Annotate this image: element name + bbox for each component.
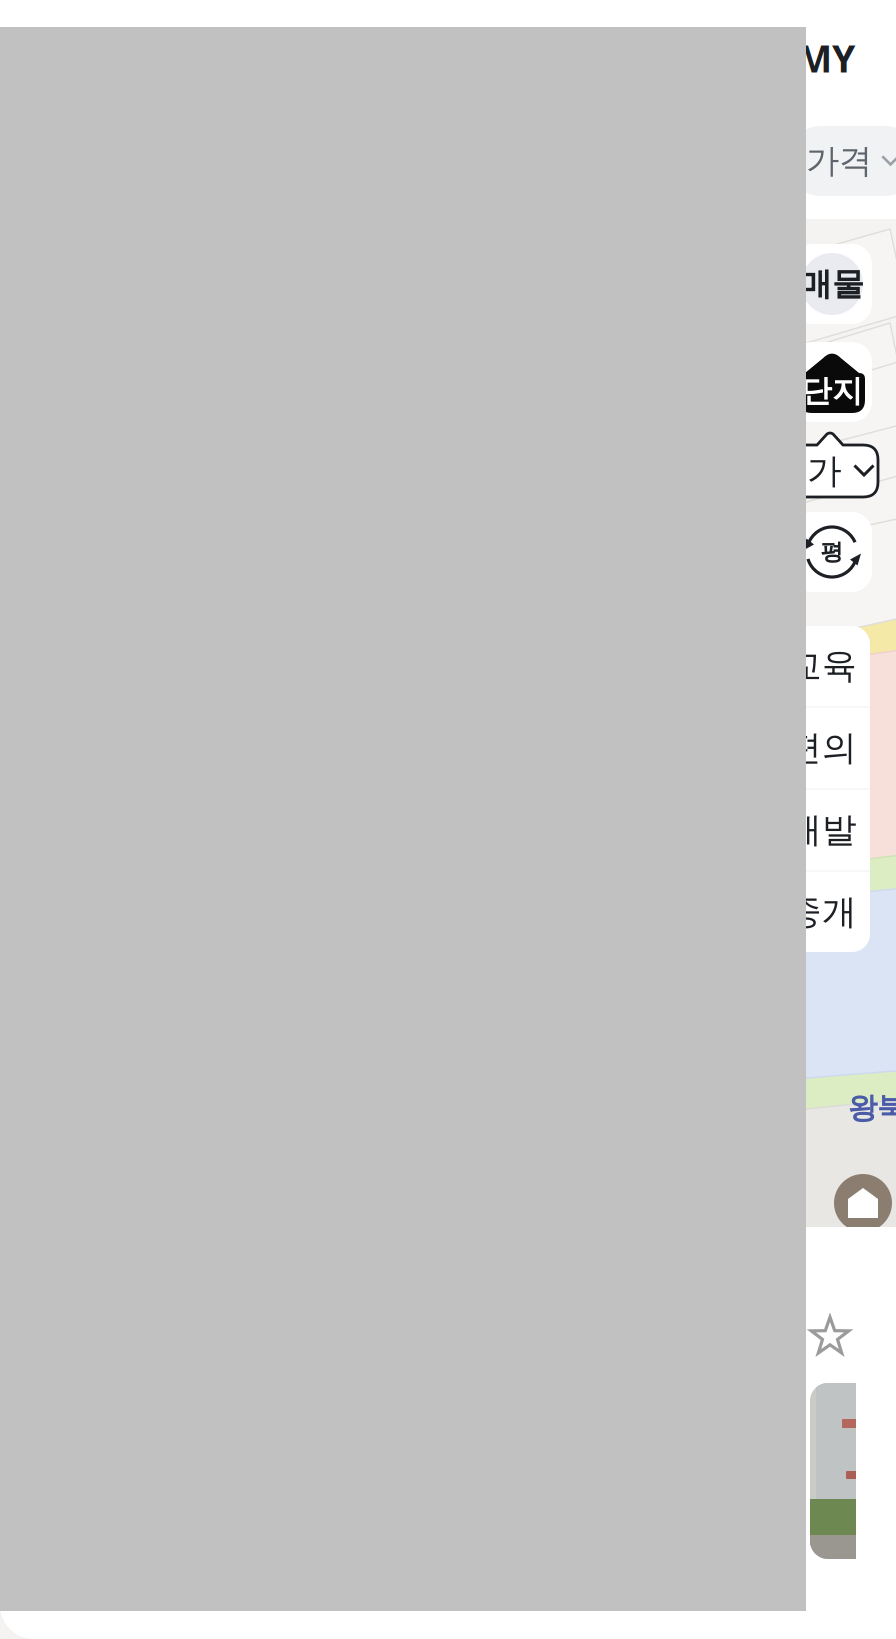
staticText: 편의 — [787, 727, 857, 769]
staticText: 단지 — [801, 372, 863, 410]
button[interactable]: 평수 전환 — [792, 512, 872, 592]
button[interactable]: 신축 — [414, 19, 522, 97]
button[interactable]: 아파트 — [16, 19, 161, 97]
staticText: MY — [797, 33, 855, 83]
button[interactable]: 중개 — [774, 871, 870, 952]
staticText: 실거래가 — [702, 450, 842, 492]
button[interactable]: 가격 — [786, 126, 896, 196]
button[interactable]: 재건축 — [269, 19, 414, 97]
staticText: 평 — [820, 538, 843, 566]
button[interactable]: MY — [780, 19, 872, 97]
button[interactable]: 매물 — [792, 244, 872, 324]
button[interactable]: 개발 — [774, 789, 870, 870]
staticText: 매물 — [800, 264, 864, 304]
staticText: 교육 — [787, 645, 857, 687]
button[interactable]: 편의 — [774, 707, 870, 788]
button[interactable]: 실거래가 — [680, 432, 878, 497]
staticText: 왕북초등학교 — [848, 1090, 896, 1126]
staticText: 가격 — [806, 140, 872, 181]
button[interactable]: 단지 — [792, 342, 872, 422]
button[interactable]: 교육 — [774, 625, 870, 706]
button[interactable]: 분양 — [161, 19, 269, 97]
button[interactable]: 즐겨찾기 — [810, 1316, 850, 1356]
staticText: 개발 — [787, 809, 857, 851]
staticText: 중개 — [787, 891, 857, 933]
